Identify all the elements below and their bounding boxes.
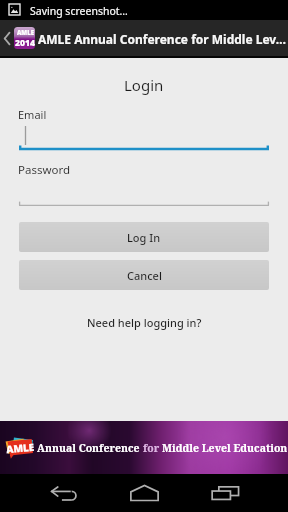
staticText: Saving screenshot…: [30, 4, 128, 18]
staticText: Login: [124, 75, 164, 95]
button[interactable]: AMLE: [0, 421, 288, 474]
button[interactable]: Need help logging in?: [79, 311, 210, 334]
staticText: Log In: [127, 230, 161, 245]
staticText: AMLE: [17, 29, 34, 37]
staticText: 2014: [15, 37, 35, 49]
button[interactable]: Home: [120, 474, 168, 512]
button[interactable]: Back: [40, 474, 88, 512]
staticText: Need help logging in?: [87, 315, 202, 330]
staticText: Password: [18, 162, 71, 178]
staticText: AMLE: [5, 440, 34, 456]
staticText: AMLE Annual Conference for Middle Lev…: [38, 31, 286, 47]
staticText: for: [143, 441, 162, 455]
staticText: Annual Conference: [37, 441, 143, 455]
staticText: Cancel: [127, 268, 162, 283]
staticText: Middle Level Education: [162, 441, 288, 455]
button[interactable]: Cancel: [19, 260, 269, 290]
staticText: Email: [18, 107, 47, 122]
button[interactable]: Log In: [19, 222, 269, 252]
button[interactable]: Navigate up: [0, 20, 13, 56]
button[interactable]: Recent apps: [201, 474, 249, 512]
